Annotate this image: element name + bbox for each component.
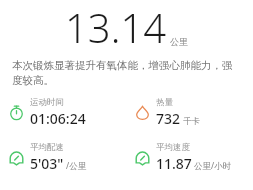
staticText: 热量 xyxy=(156,97,173,108)
staticText: 11.87 xyxy=(156,154,192,173)
staticText: 5'03" xyxy=(30,154,64,173)
staticText: 公里 xyxy=(170,36,188,47)
other: Average pace xyxy=(8,149,25,166)
staticText: 13.14 xyxy=(65,0,167,52)
staticText: 732 xyxy=(156,109,181,128)
staticText: 千卡 xyxy=(183,116,200,127)
staticText: /公里 xyxy=(66,160,87,172)
staticText: 运动时间 xyxy=(30,97,64,108)
button[interactable]: Calories xyxy=(126,97,253,128)
button[interactable]: Average speed xyxy=(126,142,253,173)
other: Calories xyxy=(134,104,151,121)
staticText: 本次锻炼显著提升有氧体能，增强心肺能力，强度较高。 xyxy=(12,59,241,87)
staticText: 平均配速 xyxy=(30,142,64,153)
other: Exercise time xyxy=(8,104,25,121)
staticText: 01:06:24 xyxy=(30,109,86,128)
other: Average speed xyxy=(134,149,151,166)
staticText: 平均速度 xyxy=(156,142,190,153)
button[interactable]: Exercise time xyxy=(0,97,126,128)
staticText: 公里/小时 xyxy=(194,160,232,172)
button[interactable]: Average pace xyxy=(0,142,126,173)
